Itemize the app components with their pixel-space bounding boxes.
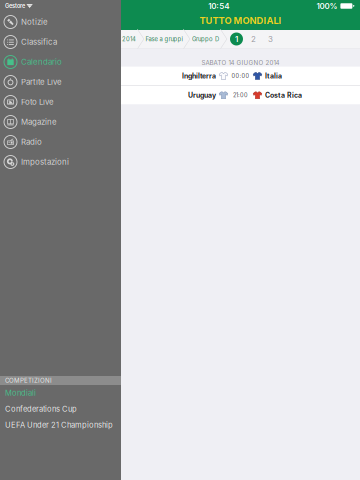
button[interactable]: Notizie — [0, 12, 121, 32]
staticText: Gruppo D — [192, 35, 219, 43]
staticText: SABATO 14 GIUGNO 2014 — [201, 59, 279, 67]
button[interactable]: 1 — [228, 30, 245, 48]
button[interactable]: Magazine — [0, 112, 121, 132]
staticText: TUTTO MONDIALI — [199, 15, 281, 26]
staticText: 3 — [268, 34, 273, 44]
staticText: 100% — [316, 1, 337, 11]
button[interactable]: 2014 — [121, 30, 137, 48]
staticText: Impostazioni — [21, 157, 69, 167]
button[interactable]: Fase a gruppi — [145, 30, 183, 48]
staticText: Notizie — [21, 17, 48, 27]
staticText: UEFA Under 21 Championship — [5, 420, 113, 430]
button[interactable]: 3 — [262, 30, 279, 48]
button[interactable]: Uruguay — [121, 86, 360, 104]
staticText: 21:00 — [233, 92, 248, 99]
staticText: Italia — [265, 72, 282, 80]
button[interactable]: Classifica — [0, 32, 121, 52]
button[interactable]: Calendario — [0, 52, 121, 72]
staticText: Foto Live — [21, 97, 54, 107]
staticText: Classifica — [21, 37, 57, 47]
staticText: Partite Live — [21, 77, 62, 87]
staticText: 10:54 — [208, 1, 229, 11]
staticText: Confederations Cup — [5, 404, 77, 414]
button[interactable]: Partite Live — [0, 72, 121, 92]
button[interactable]: Confederations Cup — [0, 401, 121, 417]
button[interactable]: Radio — [0, 132, 121, 152]
staticText: 2 — [251, 34, 256, 44]
staticText: Radio — [21, 137, 42, 147]
button[interactable]: Mondiali — [0, 385, 121, 401]
staticText: Fase a gruppi — [145, 35, 182, 43]
button[interactable]: Impostazioni — [0, 152, 121, 172]
staticText: Inghilterra — [182, 72, 216, 80]
button[interactable]: Gruppo D — [191, 30, 220, 48]
button[interactable]: UEFA Under 21 Championship — [0, 417, 121, 433]
button[interactable]: Inghilterra — [121, 67, 360, 85]
staticText: 1 — [235, 34, 238, 44]
staticText: Costa Rica — [265, 91, 302, 99]
button[interactable]: 2 — [245, 30, 262, 48]
staticText: Uruguay — [188, 91, 216, 99]
staticText: Calendario — [21, 57, 62, 67]
button[interactable]: Foto Live — [0, 92, 121, 112]
staticText: 2014 — [122, 35, 136, 43]
staticText: 00:00 — [231, 72, 249, 79]
staticText: Gestore — [5, 3, 25, 9]
staticText: COMPETIZIONI — [5, 377, 52, 384]
staticText: Magazine — [21, 117, 57, 127]
staticText: Mondiali — [5, 388, 36, 398]
